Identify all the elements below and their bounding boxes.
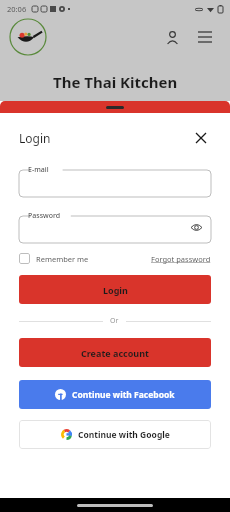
button[interactable]: Continue with Facebook — [19, 380, 211, 409]
button[interactable]: Continue with Google — [19, 420, 211, 449]
staticText: Forgot password — [151, 254, 211, 264]
staticText: Password — [28, 211, 61, 221]
staticText: Or — [110, 316, 119, 326]
button[interactable]: Close — [191, 128, 211, 148]
button[interactable]: Password — [19, 211, 211, 243]
button[interactable]: Remember me — [19, 253, 89, 264]
staticText: 20:06 — [7, 4, 27, 14]
staticText: Create account — [81, 347, 149, 359]
button[interactable]: E-mail — [19, 165, 211, 197]
button[interactable]: Menu — [192, 24, 218, 50]
button[interactable]: Create account — [19, 338, 211, 367]
button[interactable]: Account — [159, 24, 185, 50]
button[interactable]: The Thai Kitchen logo — [6, 18, 50, 56]
staticText: The Thai Kitchen — [53, 72, 178, 92]
button[interactable]: Show password — [188, 219, 204, 235]
staticText: E-mail — [28, 165, 49, 175]
button[interactable]: Forgot password — [151, 254, 211, 264]
staticText: Login — [103, 284, 128, 296]
staticText: Remember me — [36, 254, 89, 264]
staticText: Continue with Google — [78, 429, 170, 441]
staticText: Continue with Facebook — [72, 389, 175, 401]
staticText: Login — [19, 130, 51, 146]
button[interactable]: Login — [19, 275, 211, 304]
